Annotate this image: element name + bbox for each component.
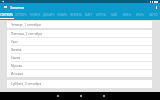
button[interactable]: АПРЕЛЬ [95, 11, 108, 20]
button[interactable]: ОКТЯБРЬ [14, 11, 28, 20]
button[interactable]: Урок [7, 38, 152, 45]
button[interactable]: МАЙ [108, 11, 121, 20]
button[interactable]: Navigation menu [0, 3, 10, 11]
button[interactable]: МАРТ [82, 11, 95, 20]
button[interactable]: Recent apps [92, 92, 115, 100]
button[interactable]: ФЕВРАЛЬ [69, 11, 82, 20]
button[interactable]: НОЯБРЬ [28, 11, 42, 20]
staticText: НОЯБРЬ [30, 13, 41, 17]
staticText: Химия [11, 56, 21, 60]
button[interactable]: ИЮНЬ [121, 11, 134, 20]
staticText: Пятница, 2 сентября [11, 32, 42, 36]
staticText: Четверг, 1 сентября [11, 23, 41, 27]
staticText: АПРЕЛЬ [96, 13, 107, 17]
button[interactable]: Музыка [7, 62, 152, 69]
staticText: Суббота, 3 сентября [11, 82, 42, 86]
button[interactable]: АВГУСТ [147, 11, 160, 20]
button[interactable]: Home [69, 92, 92, 100]
staticText: Занятия [10, 5, 24, 10]
staticText: ИЮНЬ [123, 13, 132, 17]
staticText: Урок [11, 40, 18, 44]
button[interactable]: Суббота, 3 сентября [7, 80, 152, 88]
staticText: ФЕВРАЛЬ [70, 13, 82, 17]
staticText: Музыка [11, 64, 22, 68]
staticText: ЯНВАРЬ [57, 13, 68, 17]
staticText: МАРТ [85, 13, 93, 17]
button[interactable]: Химия [7, 54, 152, 61]
button[interactable]: Пятница, 2 сентября [7, 30, 152, 37]
staticText: ИЮЛЬ [136, 13, 145, 17]
button[interactable]: ДЕКАБРЬ [42, 11, 56, 20]
staticText: Физика [11, 48, 22, 52]
button[interactable]: Back [46, 92, 69, 100]
staticText: История [11, 72, 23, 76]
button[interactable]: ЯНВАРЬ [56, 11, 69, 20]
staticText: ДЕКАБРЬ [43, 13, 55, 17]
staticText: СЕНТЯБРЬ [0, 13, 14, 17]
button[interactable]: Физика [7, 46, 152, 53]
staticText: АВГУСТ [149, 13, 159, 17]
button[interactable]: История [7, 70, 152, 77]
staticText: МАЙ [111, 13, 118, 17]
staticText: ОКТЯБРЬ [15, 13, 27, 17]
button[interactable]: More options [152, 3, 160, 11]
button[interactable]: СЕНТЯБРЬ [0, 11, 14, 20]
button[interactable]: Четверг, 1 сентября [7, 21, 152, 28]
button[interactable]: ИЮЛЬ [134, 11, 147, 20]
